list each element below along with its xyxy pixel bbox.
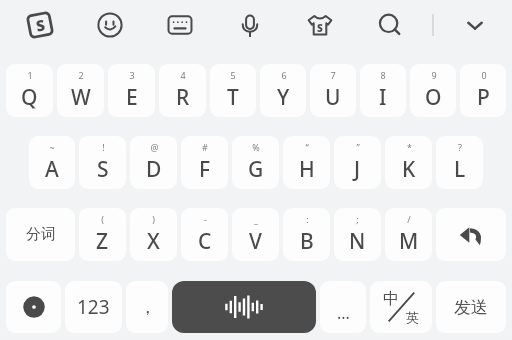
staticText: T	[227, 83, 239, 112]
staticText: M	[399, 227, 419, 256]
button[interactable]: 1	[6, 64, 53, 117]
button[interactable]: ，	[126, 281, 168, 333]
staticText: %	[252, 141, 260, 153]
staticText: S	[317, 21, 323, 35]
button[interactable]: 0	[460, 64, 506, 117]
staticText: 1	[27, 69, 33, 81]
button[interactable]: %	[232, 136, 279, 189]
staticText: B	[300, 227, 314, 256]
staticText: 8	[380, 69, 386, 81]
staticText: 分词	[26, 225, 56, 244]
button[interactable]: 4	[159, 64, 206, 117]
staticText: W	[71, 83, 91, 112]
button[interactable]: Hide keyboard	[441, 0, 508, 50]
button[interactable]: “	[283, 136, 330, 189]
staticText: 英	[406, 309, 419, 325]
staticText: S	[34, 14, 47, 36]
button[interactable]: 7	[310, 64, 356, 117]
button[interactable]: 5	[210, 64, 256, 117]
staticText: J	[354, 155, 361, 184]
staticText: Q	[21, 83, 38, 112]
staticText: H	[299, 155, 315, 184]
staticText: ...	[337, 302, 350, 324]
staticText: 发送	[454, 297, 488, 318]
button[interactable]: Search	[355, 0, 425, 50]
staticText: 6	[281, 69, 287, 81]
button[interactable]: /	[385, 208, 432, 261]
button[interactable]: _	[232, 208, 279, 261]
button[interactable]: ~	[29, 136, 75, 189]
staticText: A	[45, 155, 59, 184]
button[interactable]: 8	[360, 64, 406, 117]
staticText: 中	[383, 289, 399, 309]
button[interactable]: Voice input	[215, 0, 285, 50]
staticText: -	[204, 213, 207, 225]
staticText: ”	[356, 141, 360, 153]
button[interactable]: Switch input method	[6, 281, 61, 333]
button[interactable]: ”	[334, 136, 381, 189]
staticText: ?	[458, 141, 462, 153]
button[interactable]: Chinese English toggle	[370, 281, 432, 333]
button[interactable]: 3	[108, 64, 155, 117]
button[interactable]: )	[130, 208, 177, 261]
staticText: V	[249, 227, 262, 256]
staticText: ;	[356, 213, 359, 225]
staticText: X	[147, 227, 160, 256]
staticText: S	[97, 155, 109, 184]
staticText: _	[254, 213, 258, 225]
staticText: R	[176, 83, 190, 112]
button[interactable]: 分词	[6, 208, 75, 261]
button[interactable]: Skins	[285, 0, 355, 50]
button[interactable]: 123	[65, 281, 122, 333]
staticText: F	[199, 155, 211, 184]
staticText: Y	[277, 83, 290, 112]
button[interactable]: -	[181, 208, 228, 261]
staticText: ~	[49, 141, 55, 153]
button[interactable]: !	[79, 136, 126, 189]
staticText: !	[102, 141, 105, 153]
button[interactable]: ?	[436, 136, 483, 189]
button[interactable]: @	[130, 136, 177, 189]
staticText: I	[379, 83, 387, 112]
staticText: U	[325, 83, 341, 112]
staticText: C	[198, 227, 212, 256]
staticText: /	[407, 213, 411, 225]
staticText: 2	[78, 69, 84, 81]
staticText: O	[425, 83, 442, 112]
staticText: D	[146, 155, 162, 184]
staticText: 123	[77, 294, 110, 320]
staticText: P	[477, 83, 490, 112]
button[interactable]: Sogou menu	[4, 0, 75, 50]
staticText: K	[402, 155, 416, 184]
staticText: 7	[330, 69, 336, 81]
staticText: G	[248, 155, 264, 184]
staticText: #	[202, 141, 208, 153]
button[interactable]: Backspace	[436, 208, 506, 261]
staticText: N	[349, 227, 366, 256]
staticText: 0	[481, 69, 487, 81]
staticText: *	[407, 141, 412, 153]
button[interactable]: (	[79, 208, 126, 261]
staticText: (	[101, 213, 104, 225]
staticText: :	[306, 213, 309, 225]
button[interactable]: More	[320, 281, 366, 333]
staticText: E	[126, 83, 138, 112]
button[interactable]: 6	[260, 64, 306, 117]
staticText: “	[305, 141, 309, 153]
button[interactable]: Keyboard layout	[145, 0, 215, 50]
staticText: )	[152, 213, 155, 225]
button[interactable]: 9	[410, 64, 456, 117]
button[interactable]: 2	[57, 64, 104, 117]
button[interactable]: ;	[334, 208, 381, 261]
staticText: 3	[129, 69, 135, 81]
button[interactable]: :	[283, 208, 330, 261]
staticText: L	[454, 155, 466, 184]
button[interactable]: #	[181, 136, 228, 189]
button[interactable]: *	[385, 136, 432, 189]
button[interactable]: Emoji	[75, 0, 145, 50]
button[interactable]: 发送	[436, 281, 506, 333]
staticText: Z	[96, 227, 109, 256]
staticText: ，	[139, 297, 156, 318]
staticText: @	[150, 141, 159, 153]
button[interactable]: Space	[172, 281, 316, 333]
